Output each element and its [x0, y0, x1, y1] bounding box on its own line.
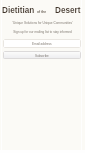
staticText: of the — [37, 10, 47, 14]
staticText: 'Unique Solutions for Unique Communities… — [0, 21, 85, 25]
staticText: Sign up for our mailing list to stay inf… — [0, 30, 85, 33]
button[interactable]: Email address — [3, 39, 81, 48]
staticText: Dietitian — [2, 6, 35, 15]
button[interactable]: Subscribe — [3, 51, 81, 59]
staticText: Desert — [55, 6, 81, 15]
staticText: Subscribe — [35, 54, 49, 57]
staticText: Email address — [32, 42, 52, 45]
